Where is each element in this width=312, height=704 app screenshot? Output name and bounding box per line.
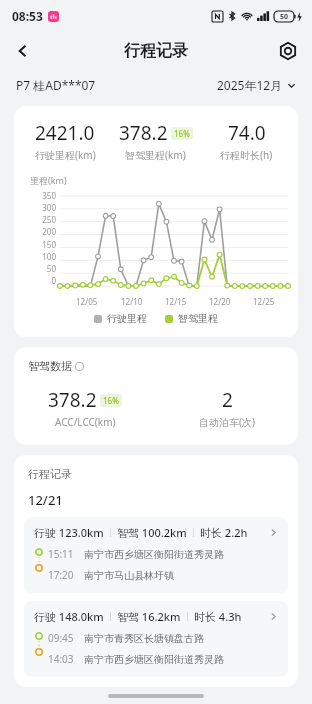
staticText: 08:53 [12,8,43,24]
staticText: 南宁市西乡塘区衡阳街道秀灵路 [84,548,224,561]
staticText: 智驾里程(km) [125,148,186,162]
staticText: 行程记录 [28,467,72,481]
staticText: 16% [103,395,119,406]
staticText: 12/05 [76,296,98,307]
staticText: 自动泊车(次) [199,415,255,429]
staticText: 南宁市西乡塘区衡阳街道秀灵路 [84,653,224,666]
staticText: 09:45 [48,631,74,645]
staticText: 行驶 123.0km [34,525,104,540]
staticText: 行驶里程 [107,312,147,325]
staticText: 0 [51,275,56,286]
staticText: 50 [280,12,289,22]
staticText: 12/25 [253,296,275,307]
staticText: 200 [42,226,56,237]
staticText: 行驶里程(km) [35,148,96,162]
button[interactable]: 行驶里程 [94,312,147,325]
staticText: 2025年12月 [217,77,283,93]
staticText: 12/21 [28,491,63,509]
staticText: 12/20 [209,296,231,307]
staticText: 南宁市马山县林圩镇 [84,569,174,582]
staticText: 12/15 [165,296,187,307]
staticText: 300 [42,202,56,213]
staticText: 12/10 [121,296,143,307]
staticText: 15:11 [48,547,74,561]
button[interactable]: 2421.0 [20,120,110,162]
staticText: 250 [42,214,56,225]
staticText: 里程(km) [30,174,67,186]
staticText: 2421.0 [35,120,95,146]
staticText: 2 [222,387,233,413]
button[interactable]: 378.2 [14,387,156,429]
button[interactable]: 智驾数据 [28,359,84,373]
button[interactable]: 74.0 [201,120,292,162]
staticText: 智驾 16.2km [117,609,181,624]
staticText: 智驾 100.2km [117,525,187,540]
staticText: 南宁市青秀区长塘镇盘古路 [84,632,204,645]
staticText: 100 [42,251,56,262]
staticText: 行程记录 [124,41,188,61]
staticText: 50 [46,263,56,274]
button[interactable]: 行驶 123.0km [24,517,288,593]
button[interactable]: 智驾里程 [165,312,218,325]
button[interactable]: 2025年12月 [217,77,296,93]
staticText: 16% [174,128,190,139]
button[interactable]: P7 桂AD***07 [16,77,96,93]
staticText: ACC/LCC(km) [55,415,116,429]
staticText: 17:20 [48,568,74,582]
staticText: 行驶 148.0km [34,609,104,624]
button[interactable]: 378.2 [110,120,201,162]
staticText: 350 [42,190,56,201]
button[interactable]: 行驶 148.0km [24,601,288,677]
staticText: 74.0 [228,120,266,146]
staticText: 时长 4.3h [194,609,242,624]
staticText: 378.2 [119,120,168,146]
staticText: 378.2 [48,387,97,413]
staticText: 行程时长(h) [220,148,273,162]
staticText: 智驾数据 [28,359,72,373]
staticText: 150 [42,239,56,250]
staticText: 14:03 [48,652,74,666]
button[interactable]: Settings [272,35,304,67]
staticText: P7 桂AD***07 [16,77,96,93]
staticText: 智驾里程 [178,312,218,325]
button[interactable]: 2 [156,387,298,429]
button[interactable]: Back [6,34,40,68]
staticText: 时长 2.2h [200,525,248,540]
